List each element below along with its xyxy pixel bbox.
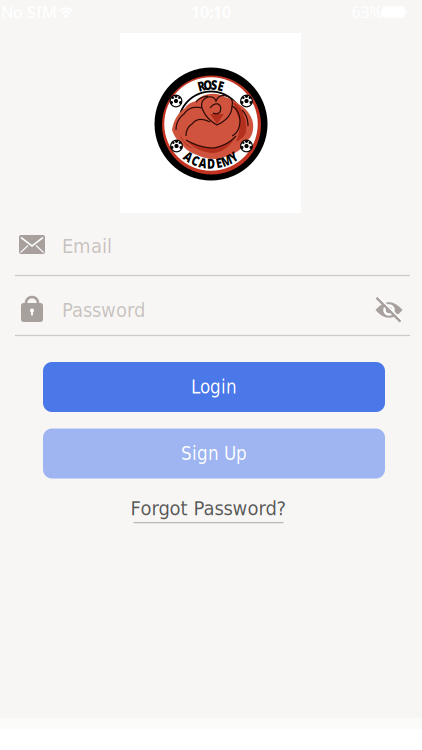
- staticText: Email: [62, 234, 112, 258]
- staticText: A: [198, 154, 208, 172]
- staticText: E: [217, 77, 224, 95]
- button[interactable]: Show password: [371, 293, 406, 326]
- staticText: No SIM: [1, 1, 57, 23]
- button[interactable]: Password: [14, 288, 408, 332]
- staticText: 63%: [351, 1, 382, 23]
- staticText: A: [184, 148, 194, 165]
- staticText: Login: [191, 376, 237, 398]
- staticText: Forgot Password?: [130, 497, 286, 520]
- button[interactable]: Sign Up: [43, 428, 385, 478]
- button[interactable]: Forgot Password?: [130, 497, 286, 523]
- staticText: 10:10: [191, 1, 231, 23]
- staticText: O: [202, 76, 213, 93]
- staticText: Sign Up: [181, 443, 247, 464]
- button[interactable]: Email: [14, 224, 408, 268]
- staticText: C: [191, 151, 200, 169]
- staticText: R: [197, 77, 206, 95]
- button[interactable]: Login: [43, 362, 385, 412]
- staticText: Password: [62, 298, 145, 322]
- staticText: E: [215, 154, 222, 172]
- staticText: D: [206, 155, 216, 172]
- staticText: S: [210, 76, 218, 93]
- staticText: M: [220, 151, 233, 169]
- staticText: Y: [229, 148, 238, 165]
